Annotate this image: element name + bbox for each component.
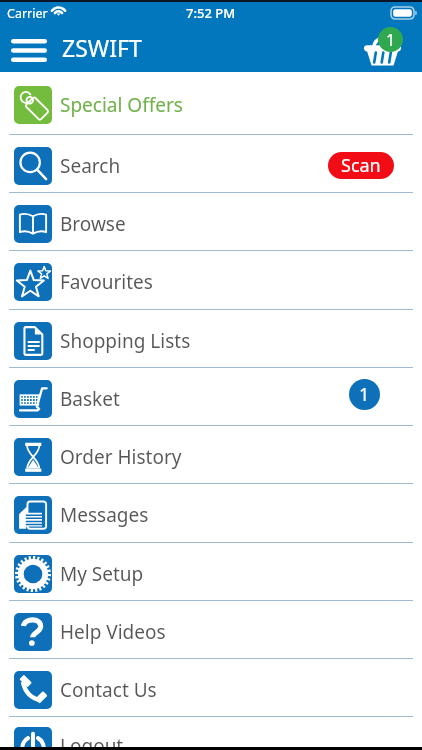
staticText: Shopping Lists	[60, 328, 191, 354]
staticText: My Setup	[60, 561, 144, 587]
staticText: Search	[60, 153, 121, 179]
staticText: Messages	[60, 502, 149, 528]
staticText: Order History	[60, 444, 182, 470]
staticText: Carrier	[7, 5, 48, 22]
button[interactable]: Basket	[0, 368, 422, 426]
staticText: Favourites	[60, 269, 153, 295]
button[interactable]: My Setup	[0, 543, 422, 601]
button[interactable]: Contact Us	[0, 659, 422, 717]
button[interactable]: Special Offers	[0, 72, 422, 135]
staticText: Browse	[60, 211, 126, 237]
button[interactable]: Menu	[11, 39, 47, 62]
button[interactable]: Scan	[328, 152, 394, 179]
staticText: Special Offers	[60, 92, 183, 118]
staticText: Logout	[60, 733, 124, 750]
button[interactable]: Shopping Lists	[0, 310, 422, 368]
button[interactable]: Order History	[0, 426, 422, 484]
button[interactable]: Favourites	[0, 251, 422, 310]
staticText: Scan	[341, 153, 381, 178]
staticText: 1	[359, 382, 370, 407]
staticText: Help Videos	[60, 619, 166, 645]
staticText: 7:52 PM	[186, 4, 236, 22]
staticText: Contact Us	[60, 677, 157, 703]
button[interactable]: Basket	[360, 28, 405, 72]
staticText: Basket	[60, 386, 120, 412]
button[interactable]: Browse	[0, 193, 422, 251]
button[interactable]: Messages	[0, 484, 422, 543]
button[interactable]: Logout	[0, 717, 422, 750]
staticText: ZSWIFT	[62, 32, 142, 63]
button[interactable]: Search	[0, 135, 422, 193]
staticText: 1	[386, 29, 396, 51]
button[interactable]: Help Videos	[0, 601, 422, 659]
